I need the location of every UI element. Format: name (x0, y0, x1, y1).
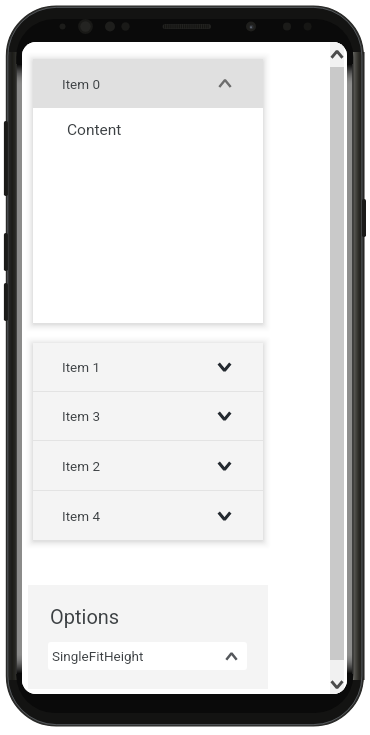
staticText: Item 2 (62, 458, 101, 474)
staticText: Content (67, 121, 122, 139)
staticText: Item 4 (62, 508, 101, 524)
button[interactable]: Item 2 (33, 441, 263, 490)
staticText: Item 3 (62, 408, 101, 424)
button[interactable]: Scroll up (330, 42, 344, 67)
button[interactable]: Item 1 (33, 343, 263, 391)
button[interactable]: Item 3 (33, 392, 263, 440)
button[interactable]: Item 4 (33, 491, 263, 540)
staticText: Item 0 (62, 76, 101, 92)
staticText: Item 1 (62, 359, 101, 375)
button[interactable]: Item 0 (33, 59, 263, 108)
staticText: Options (50, 605, 120, 628)
button[interactable]: SingleFitHeight (48, 642, 247, 670)
button[interactable]: Scroll down (330, 660, 344, 694)
staticText: SingleFitHeight (52, 648, 144, 664)
